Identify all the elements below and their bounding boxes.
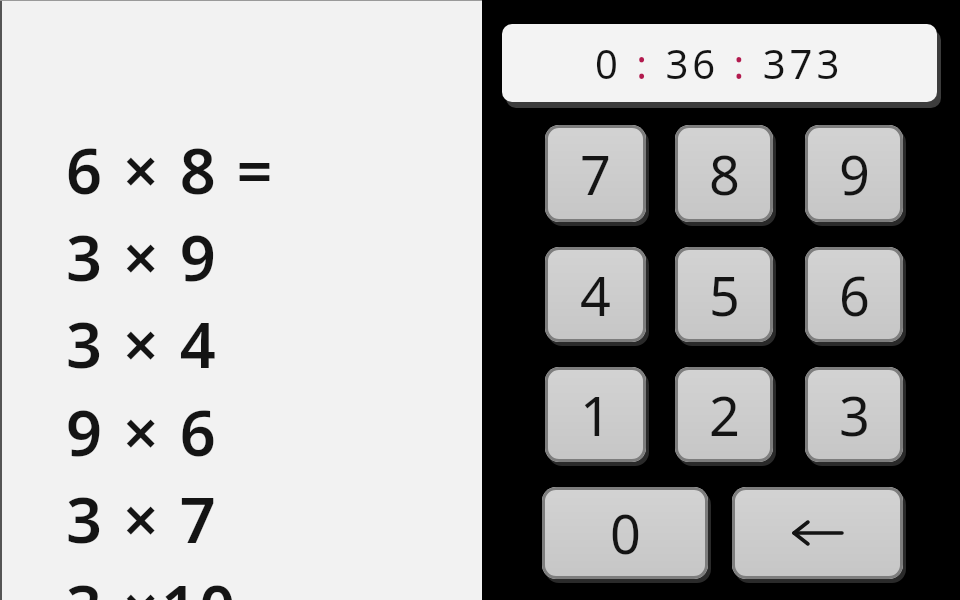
button[interactable]: 0 : 36 : 373 [502, 24, 937, 102]
staticText: 7 [580, 137, 611, 211]
button[interactable]: 1 [545, 367, 646, 462]
button[interactable]: 2 [675, 367, 773, 462]
staticText: 9 [839, 137, 870, 211]
staticText: 1 [580, 378, 611, 452]
staticText: 6 × 8 = [66, 127, 275, 213]
staticText: 3 ×10 [66, 564, 238, 600]
staticText: 0 [610, 496, 641, 570]
staticText: 0 : 36 : 373 [595, 36, 844, 90]
staticText: 5 [709, 258, 740, 332]
button[interactable]: 0 [542, 487, 708, 579]
staticText: 3 [839, 378, 870, 452]
staticText: 2 [709, 378, 740, 452]
staticText: 9 × 6 [66, 389, 218, 475]
button[interactable]: 8 [675, 125, 773, 222]
staticText: 8 [709, 137, 740, 211]
button[interactable]: 4 [545, 247, 646, 342]
button[interactable] [732, 487, 903, 579]
button[interactable]: 5 [675, 247, 773, 342]
button[interactable]: 3 [805, 367, 903, 462]
staticText: 3 × 7 [66, 476, 218, 562]
staticText: 4 [580, 258, 611, 332]
button[interactable]: 9 [805, 125, 903, 222]
button[interactable]: 7 [545, 125, 646, 222]
staticText: 6 [839, 258, 870, 332]
staticText: 3 × 4 [66, 301, 218, 387]
button[interactable]: 6 [805, 247, 903, 342]
staticText: 3 × 9 [66, 214, 218, 300]
